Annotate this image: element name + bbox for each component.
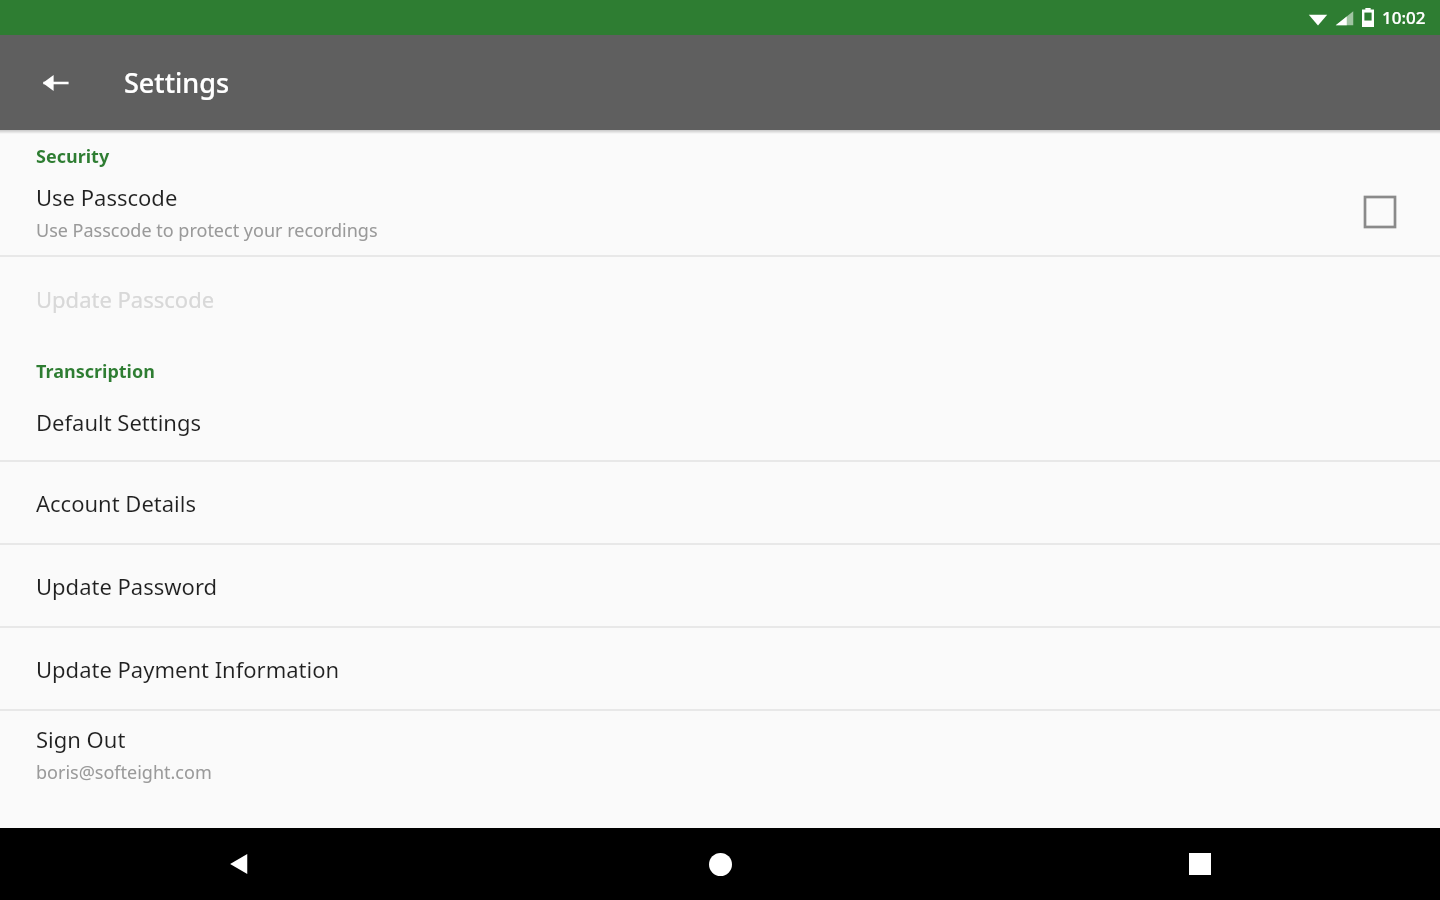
button[interactable]: Use Passcode: [0, 169, 1440, 255]
button[interactable]: Back: [28, 55, 84, 111]
staticText: 10:02: [1382, 6, 1426, 29]
button[interactable]: Update Payment Information: [0, 628, 1440, 709]
button[interactable]: Home: [480, 828, 960, 900]
button[interactable]: Default Settings: [0, 384, 1440, 460]
button[interactable]: Use Passcode toggle: [1356, 188, 1404, 236]
staticText: Default Settings: [36, 407, 202, 437]
staticText: Transcription: [36, 359, 155, 384]
staticText: Update Passcode: [36, 284, 215, 314]
staticText: boris@softeight.com: [36, 760, 212, 785]
staticText: Settings: [124, 64, 230, 101]
staticText: Account Details: [36, 488, 196, 518]
button[interactable]: Update Password: [0, 545, 1440, 626]
staticText: Security: [36, 144, 110, 169]
button[interactable]: Back: [0, 828, 480, 900]
button[interactable]: Recents: [960, 828, 1440, 900]
staticText: Sign Out: [36, 724, 126, 754]
staticText: Use Passcode to protect your recordings: [36, 218, 378, 243]
staticText: Update Password: [36, 571, 218, 601]
staticText: Use Passcode: [36, 182, 178, 212]
button[interactable]: Account Details: [0, 462, 1440, 543]
staticText: Update Payment Information: [36, 654, 340, 684]
button[interactable]: Sign Out: [0, 711, 1440, 797]
